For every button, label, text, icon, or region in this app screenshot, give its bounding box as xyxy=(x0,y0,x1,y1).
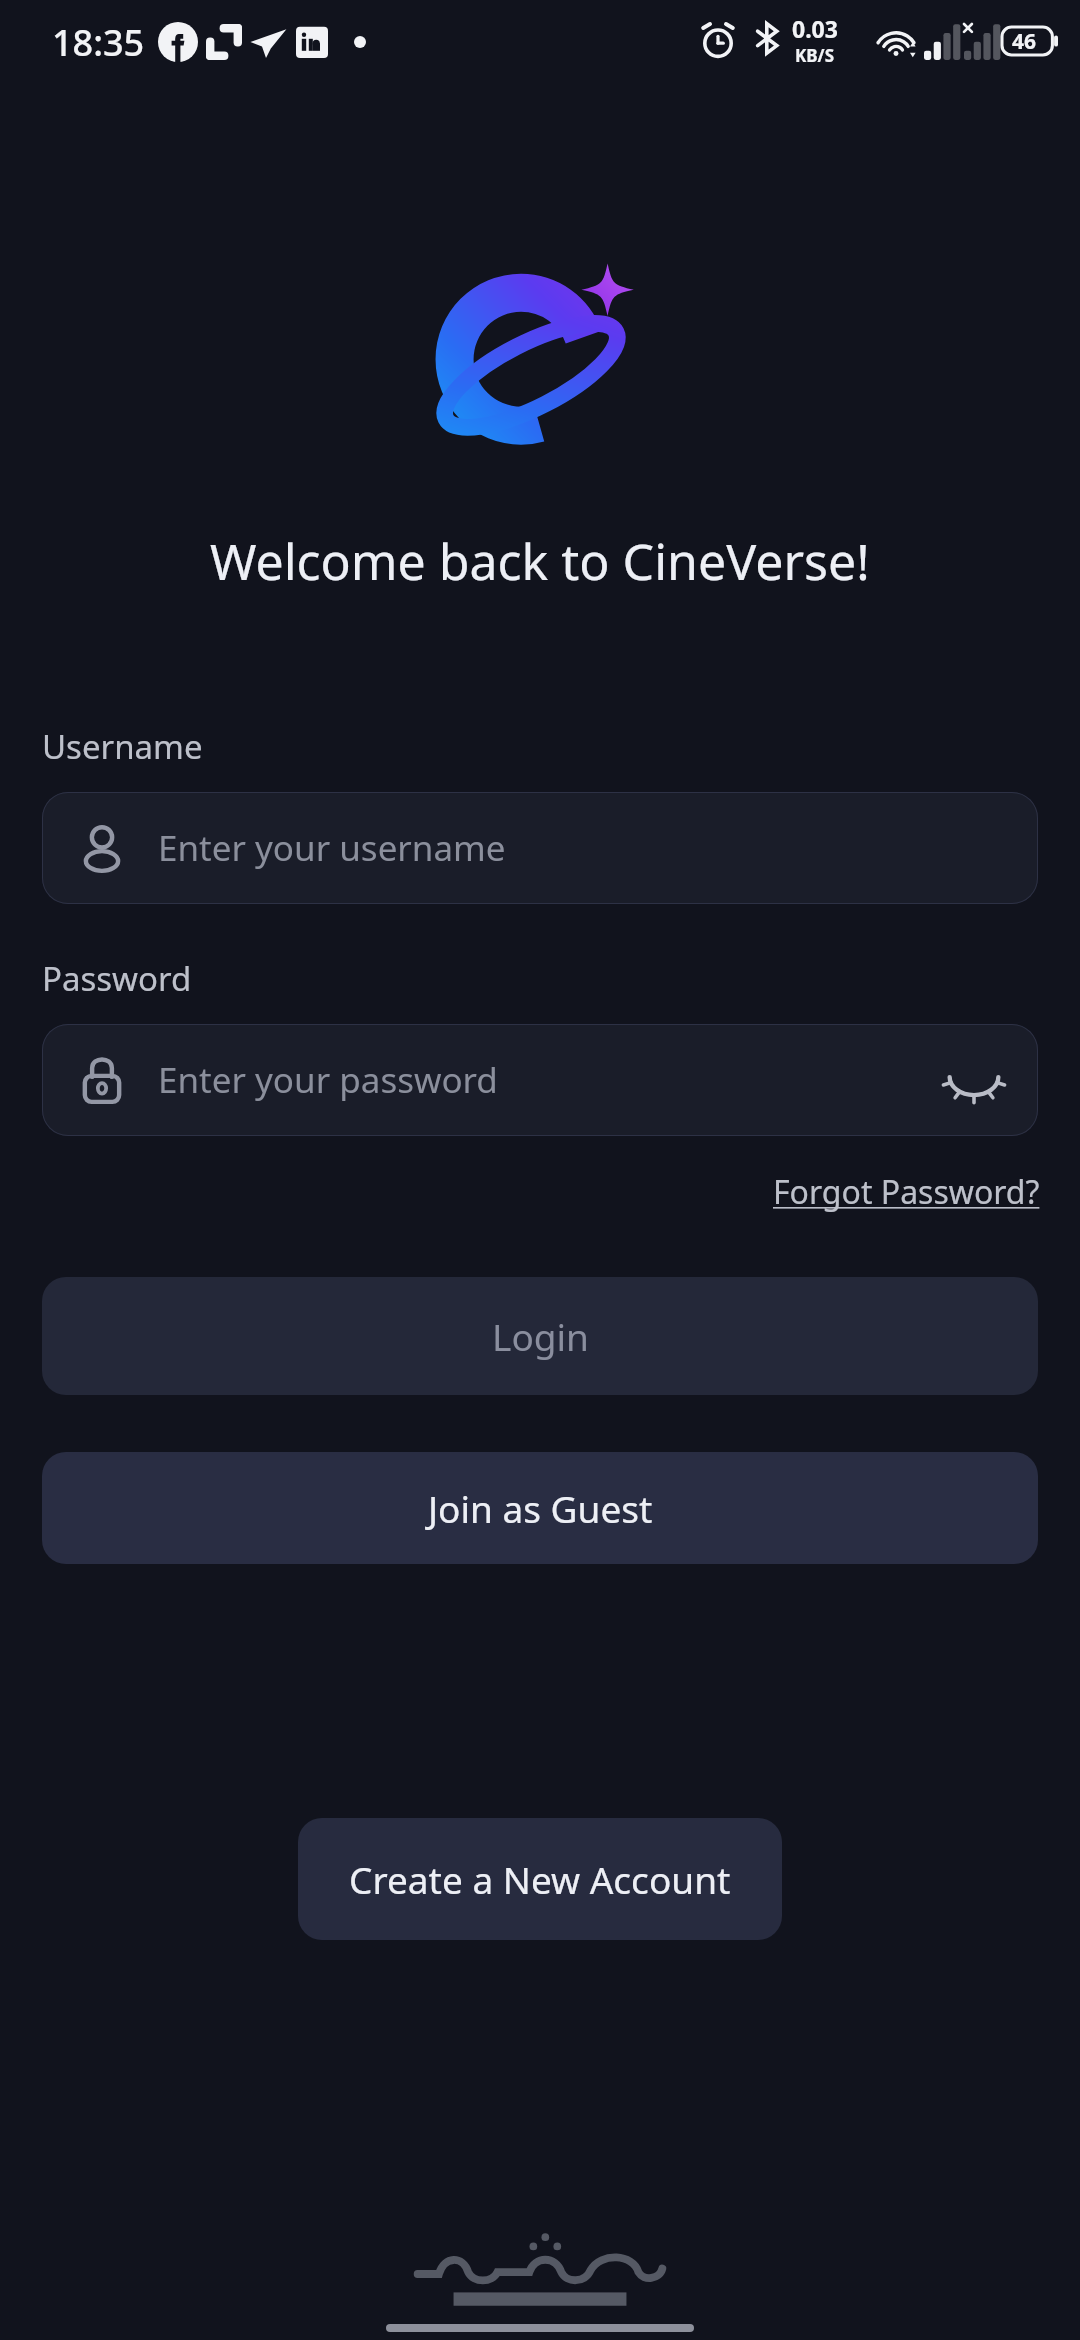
staticText: Enter your password xyxy=(158,1056,498,1104)
staticText: 46 xyxy=(1012,27,1037,56)
staticText: Login xyxy=(492,1311,589,1361)
staticText: Forgot Password? xyxy=(773,1170,1040,1214)
button[interactable]: Login xyxy=(42,1277,1038,1395)
button[interactable]: Show password xyxy=(936,1042,1012,1118)
staticText: KB/S xyxy=(795,44,835,67)
button[interactable]: Forgot Password? xyxy=(773,1170,1040,1214)
button[interactable]: Enter your password xyxy=(42,1024,1038,1136)
staticText: 0.03 xyxy=(792,13,838,44)
staticText: Password xyxy=(42,956,192,1001)
button[interactable]: Create a New Account xyxy=(298,1818,782,1940)
staticText: Enter your username xyxy=(158,824,506,872)
staticText: Username xyxy=(42,724,203,769)
button[interactable]: Join as Guest xyxy=(42,1452,1038,1564)
staticText: 18:35 xyxy=(52,18,145,67)
staticText: Welcome back to CineVerse! xyxy=(210,527,870,595)
staticText: Create a New Account xyxy=(349,1854,731,1904)
staticText: Join as Guest xyxy=(428,1483,653,1533)
button[interactable]: Enter your username xyxy=(42,792,1038,904)
